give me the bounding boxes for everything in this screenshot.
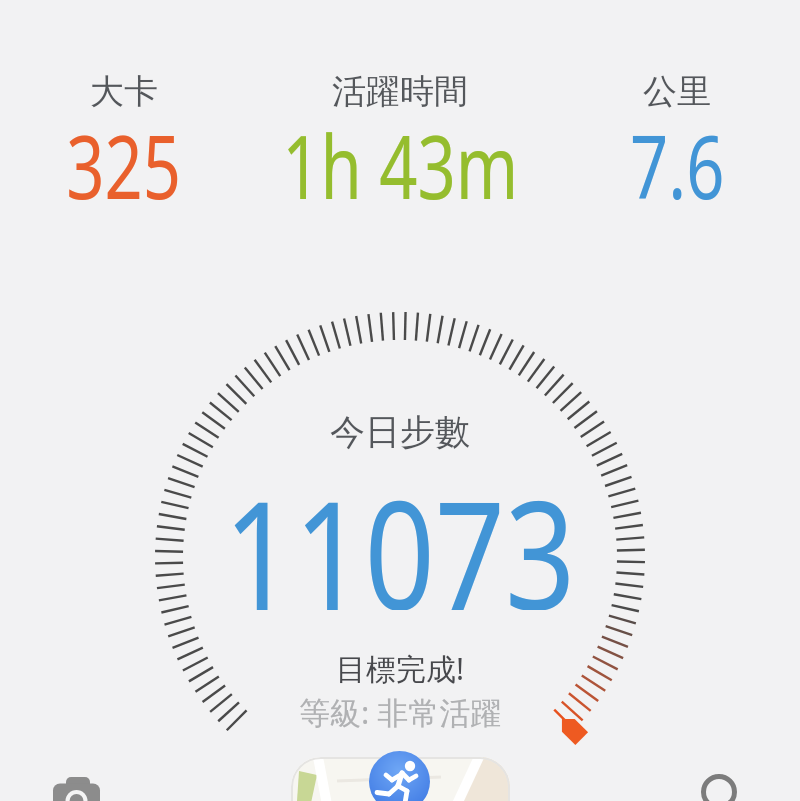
staticText: 1h 43m bbox=[282, 105, 519, 225]
staticText: 325 bbox=[66, 105, 182, 225]
staticText: 7.6 bbox=[630, 105, 725, 225]
button[interactable] bbox=[369, 751, 430, 801]
staticText: 等級: 非常活躍 bbox=[299, 691, 502, 733]
button[interactable] bbox=[46, 770, 108, 801]
button[interactable] bbox=[291, 757, 510, 801]
staticText: 11073 bbox=[224, 450, 576, 610]
staticText: 公里 bbox=[643, 70, 711, 113]
staticText: 今日步數 bbox=[330, 410, 470, 454]
staticText: 大卡 bbox=[90, 70, 158, 113]
staticText: 活躍時間 bbox=[332, 70, 468, 113]
button[interactable] bbox=[698, 771, 742, 801]
staticText: 目標完成! bbox=[336, 648, 465, 689]
